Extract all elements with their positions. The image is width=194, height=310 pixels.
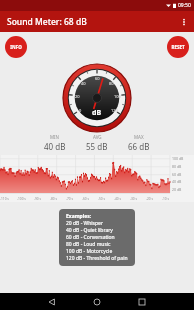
button[interactable]: Home bbox=[90, 295, 104, 309]
staticText: 20 dB - Whisper bbox=[66, 220, 103, 227]
staticText: 60 bbox=[95, 76, 100, 81]
staticText: 100 bbox=[114, 94, 121, 99]
staticText: -90 s bbox=[34, 197, 42, 201]
staticText: dB bbox=[92, 108, 102, 118]
staticText: Sound Meter: 68 dB bbox=[7, 16, 87, 28]
staticText: 60 dB - Conversation bbox=[66, 234, 115, 241]
staticText: 120 bbox=[111, 108, 118, 113]
staticText: -10 s bbox=[162, 197, 170, 201]
staticText: -20 s bbox=[146, 197, 154, 201]
staticText: -100 s bbox=[17, 197, 26, 201]
staticText: 80 dB - Loud music bbox=[66, 241, 111, 248]
staticText: 40 bbox=[81, 81, 86, 86]
staticText: -80 s bbox=[50, 197, 58, 201]
button[interactable]: INFO bbox=[5, 36, 27, 58]
button[interactable]: More options bbox=[174, 11, 194, 32]
staticText: 100 dB - Motorcycle bbox=[66, 248, 113, 255]
staticText: 40 dB bbox=[44, 141, 66, 152]
staticText: 80 bbox=[109, 81, 114, 86]
staticText: 0 bbox=[79, 108, 82, 113]
staticText: -70 s bbox=[66, 197, 74, 201]
staticText: 20 dB bbox=[172, 187, 182, 192]
staticText: RESET bbox=[171, 44, 185, 50]
button[interactable]: Recent apps bbox=[135, 295, 149, 309]
staticText: 100 dB bbox=[172, 156, 184, 161]
staticText: AVG bbox=[93, 134, 102, 140]
staticText: Examples: bbox=[66, 213, 92, 220]
staticText: 55 dB bbox=[86, 141, 108, 152]
staticText: 120 dB - Threshold of pain bbox=[66, 255, 128, 262]
staticText: 09:50 bbox=[178, 2, 191, 9]
staticText: -110 s bbox=[0, 197, 9, 201]
staticText: -30 s bbox=[130, 197, 138, 201]
button[interactable]: RESET bbox=[167, 36, 189, 58]
staticText: MIN bbox=[50, 134, 60, 140]
staticText: -60 s bbox=[82, 197, 90, 201]
staticText: 80 dB bbox=[172, 164, 182, 169]
staticText: 20 bbox=[75, 94, 80, 99]
staticText: MAX bbox=[134, 134, 144, 140]
staticText: 40 dB - Quiet library bbox=[66, 227, 113, 234]
staticText: 40 dB bbox=[172, 179, 182, 184]
staticText: 60 dB bbox=[172, 172, 182, 177]
button[interactable]: Back bbox=[45, 295, 59, 309]
staticText: -50 s bbox=[98, 197, 106, 201]
staticText: -40 s bbox=[114, 197, 122, 201]
staticText: INFO bbox=[10, 44, 22, 50]
staticText: 66 dB bbox=[128, 141, 150, 152]
